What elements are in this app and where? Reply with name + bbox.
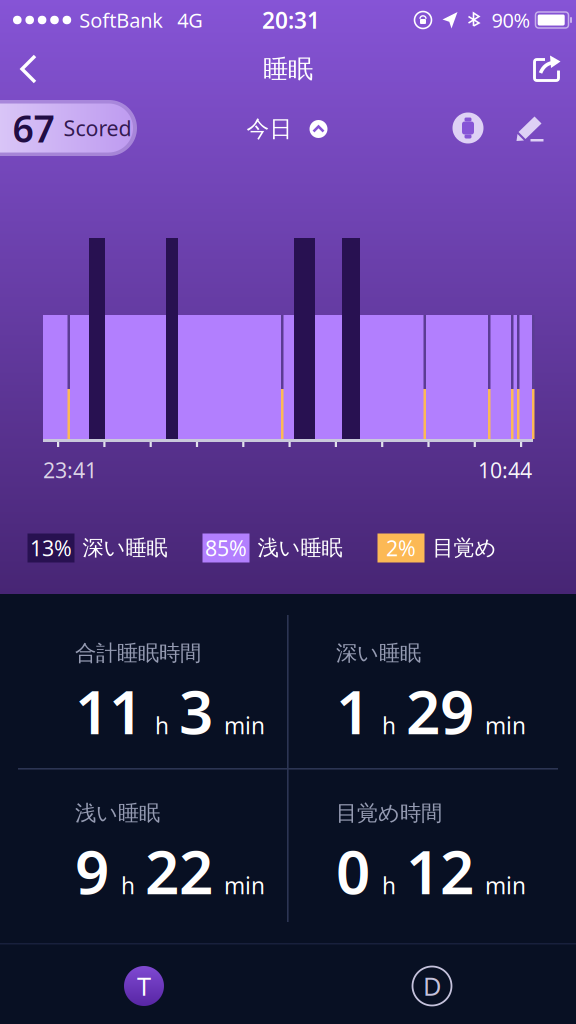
button[interactable]: 67: [0, 100, 137, 156]
staticText: 10:44: [478, 456, 532, 484]
staticText: 23:41: [43, 456, 97, 484]
button[interactable]: Today: [124, 966, 164, 1006]
button[interactable]: 今日: [246, 115, 327, 143]
staticText: 1: [336, 671, 370, 751]
staticText: 29: [406, 671, 474, 751]
staticText: D: [423, 969, 441, 1003]
staticText: h: [155, 710, 169, 741]
staticText: h: [121, 870, 135, 901]
staticText: h: [382, 870, 396, 901]
staticText: min: [224, 870, 265, 901]
staticText: 0: [336, 831, 370, 911]
button[interactable]: Data: [412, 966, 452, 1006]
staticText: 67: [12, 103, 54, 153]
staticText: h: [382, 710, 396, 741]
staticText: 22: [145, 831, 213, 911]
button[interactable]: Share: [518, 45, 576, 93]
button[interactable]: Back: [0, 45, 58, 93]
staticText: 13%: [30, 534, 72, 562]
staticText: 目覚め時間: [336, 800, 442, 826]
staticText: min: [485, 870, 526, 901]
button[interactable]: Apple Watch: [451, 111, 485, 145]
staticText: 3: [179, 671, 213, 751]
staticText: 目覚め: [432, 535, 496, 561]
staticText: 浅い睡眠: [257, 535, 342, 561]
staticText: Scored: [63, 114, 131, 142]
staticText: min: [224, 710, 265, 741]
staticText: 深い睡眠: [336, 640, 421, 666]
staticText: 合計睡眠時間: [75, 640, 201, 666]
staticText: 9: [75, 831, 109, 911]
staticText: 4G: [177, 7, 203, 33]
staticText: 12: [406, 831, 474, 911]
staticText: T: [137, 969, 151, 1003]
staticText: 今日: [246, 115, 292, 143]
staticText: 20:31: [262, 5, 320, 35]
staticText: 睡眠: [263, 53, 313, 84]
staticText: 85%: [205, 534, 247, 562]
button[interactable]: Edit: [516, 114, 546, 144]
staticText: 浅い睡眠: [75, 800, 160, 826]
staticText: SoftBank: [79, 7, 163, 33]
staticText: 11: [75, 671, 143, 751]
staticText: 2%: [386, 534, 416, 562]
staticText: 深い睡眠: [82, 535, 167, 561]
staticText: 90%: [491, 7, 530, 33]
staticText: min: [485, 710, 526, 741]
